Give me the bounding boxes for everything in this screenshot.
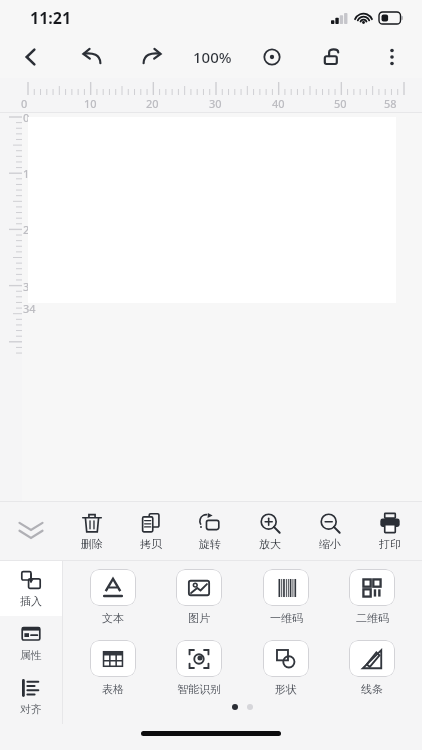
button[interactable]: 旋转 <box>180 502 240 560</box>
button[interactable]: 删除 <box>62 502 121 560</box>
staticText: 拷贝 <box>140 537 162 551</box>
button[interactable]: 对齐 <box>0 670 62 724</box>
button[interactable]: Redo <box>122 36 182 78</box>
staticText: 20 <box>146 96 159 111</box>
button[interactable]: 拷贝 <box>121 502 180 560</box>
staticText: 0 <box>23 110 30 125</box>
button[interactable]: 插入 <box>0 561 62 616</box>
staticText: 40 <box>272 96 285 111</box>
button[interactable]: 文本 <box>76 569 150 625</box>
staticText: 智能识别 <box>177 682 221 696</box>
staticText: 0 <box>21 96 28 111</box>
staticText: 删除 <box>81 537 103 551</box>
button[interactable]: 100% <box>182 36 242 78</box>
staticText: 图片 <box>188 611 210 625</box>
button[interactable]: 线条 <box>335 640 409 696</box>
button[interactable]: 表格 <box>76 640 150 696</box>
staticText: 10 <box>23 166 36 181</box>
button[interactable]: More options <box>362 36 422 78</box>
staticText: 58 <box>384 96 397 111</box>
staticText: 线条 <box>361 682 383 696</box>
button[interactable]: Back <box>0 36 61 78</box>
staticText: 插入 <box>20 594 42 608</box>
button[interactable]: 形状 <box>249 640 323 696</box>
button[interactable]: 缩小 <box>300 502 360 560</box>
button[interactable]: 属性 <box>0 616 62 670</box>
staticText: 旋转 <box>199 537 221 551</box>
staticText: 缩小 <box>319 537 341 551</box>
button[interactable]: Undo <box>61 36 122 78</box>
button[interactable]: 打印 <box>360 502 420 560</box>
button[interactable]: Center view <box>242 36 302 78</box>
button[interactable]: 图片 <box>162 569 236 625</box>
staticText: 属性 <box>20 648 42 662</box>
staticText: 100% <box>193 47 232 67</box>
staticText: 形状 <box>275 682 297 696</box>
staticText: 二维码 <box>356 611 389 625</box>
staticText: 50 <box>334 96 347 111</box>
staticText: 10 <box>84 96 97 111</box>
button[interactable]: Unlock <box>302 36 362 78</box>
button[interactable]: 放大 <box>240 502 300 560</box>
staticText: 34 <box>23 301 36 316</box>
button[interactable]: 一维码 <box>249 569 323 625</box>
staticText: 11:21 <box>30 7 72 29</box>
staticText: 表格 <box>102 682 124 696</box>
staticText: 30 <box>23 279 36 294</box>
button[interactable]: 智能识别 <box>162 640 236 696</box>
button[interactable]: Collapse panel <box>0 502 62 560</box>
button[interactable]: 二维码 <box>335 569 409 625</box>
staticText: 放大 <box>259 537 281 551</box>
staticText: 20 <box>23 222 36 237</box>
staticText: 30 <box>209 96 222 111</box>
staticText: 打印 <box>379 537 401 551</box>
staticText: 文本 <box>102 611 124 625</box>
staticText: 对齐 <box>20 702 42 716</box>
staticText: 一维码 <box>270 611 303 625</box>
